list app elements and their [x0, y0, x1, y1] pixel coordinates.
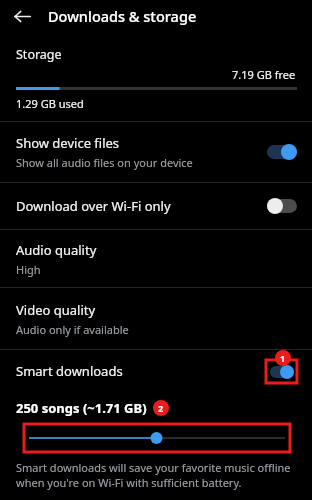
button[interactable]: Download over Wi-Fi only — [0, 183, 312, 229]
staticText: Smart downloads — [16, 362, 266, 380]
staticText: High — [16, 262, 41, 277]
staticText: 7.19 GB free — [232, 67, 296, 82]
staticText: Audio quality — [16, 241, 97, 259]
staticText: Video quality — [16, 301, 96, 319]
button[interactable]: Songs amount slider — [24, 424, 290, 452]
button[interactable]: Video quality — [0, 288, 312, 349]
staticText: Download over Wi-Fi only — [16, 197, 267, 215]
button[interactable]: Back — [8, 2, 36, 30]
button[interactable]: Show device files — [0, 122, 312, 182]
staticText: Downloads & storage — [48, 6, 197, 26]
staticText: 2 — [158, 402, 164, 414]
staticText: when you're on Wi-Fi with sufficient bat… — [16, 475, 242, 490]
staticText: Smart downloads will save your favorite … — [16, 460, 291, 475]
staticText: 1.29 GB used — [16, 96, 84, 111]
staticText: Audio only if available — [16, 322, 129, 337]
staticText: 1 — [280, 352, 286, 364]
staticText: Show all audio files on your device — [16, 155, 193, 170]
staticText: 250 songs (~1.71 GB) — [16, 399, 147, 417]
staticText: Show device files — [16, 134, 120, 152]
staticText: Storage — [16, 46, 62, 63]
button[interactable]: Smart downloads — [0, 350, 312, 392]
button[interactable]: Audio quality — [0, 230, 312, 287]
